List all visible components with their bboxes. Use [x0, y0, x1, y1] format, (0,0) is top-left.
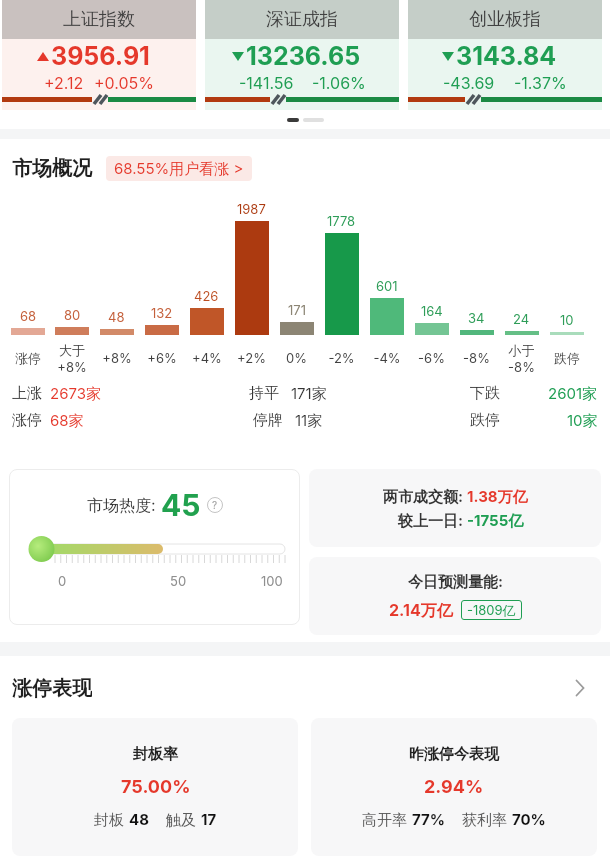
staticText: 触及: [166, 810, 201, 829]
staticText: 2.14万亿: [389, 600, 453, 620]
staticText: 10家: [567, 411, 598, 430]
staticText: 2601家: [548, 384, 598, 403]
staticText: +2.12: [44, 73, 84, 92]
staticText: 上证指数: [63, 8, 135, 31]
staticText: 45: [161, 487, 201, 523]
staticText: -141.56: [239, 73, 294, 92]
staticText: 164: [421, 303, 443, 319]
staticText: 0%: [286, 350, 307, 366]
button[interactable]: 上证指数: [2, 0, 196, 110]
staticText: 1778: [327, 213, 356, 229]
staticText: 34: [468, 310, 485, 326]
staticText: 2.94%: [424, 776, 484, 798]
staticText: -43.69: [443, 73, 495, 92]
staticText: 跌停: [554, 350, 580, 366]
staticText: 两市成交额:: [383, 487, 467, 506]
staticText: 80: [64, 307, 81, 323]
staticText: 50: [170, 573, 187, 589]
staticText: 10: [560, 312, 574, 328]
staticText: 426: [194, 288, 219, 304]
staticText: 77%: [412, 810, 445, 828]
staticText: 0: [58, 573, 67, 589]
staticText: 小于 -8%: [508, 342, 535, 375]
staticText: 100: [261, 573, 283, 589]
staticText: 11家: [295, 411, 323, 430]
staticText: +0.05%: [94, 73, 155, 92]
staticText: 68家: [50, 411, 84, 430]
staticText: 24: [513, 311, 530, 327]
staticText: +6%: [147, 350, 177, 366]
staticText: 创业板指: [469, 8, 541, 31]
staticText: 171家: [291, 384, 327, 403]
staticText: -1.06%: [312, 73, 366, 92]
staticText: -1809亿: [467, 602, 516, 618]
staticText: +4%: [192, 350, 222, 366]
staticText: 涨停表现: [12, 676, 92, 700]
staticText: 较上一日:: [398, 511, 467, 530]
button[interactable]: 封板率: [12, 718, 298, 856]
staticText: 13236.65: [246, 41, 361, 71]
staticText: -8%: [463, 350, 490, 366]
staticText: 68.55%用户看涨 >: [114, 159, 244, 178]
button[interactable]: 68.55%用户看涨 >: [106, 156, 252, 181]
button[interactable]: 深证成指: [205, 0, 399, 110]
button[interactable]: 创业板指: [408, 0, 602, 110]
staticText: 市场热度:: [87, 495, 161, 515]
staticText: 封板率: [133, 745, 178, 764]
staticText: 1987: [237, 201, 266, 217]
staticText: ?: [212, 499, 218, 511]
staticText: 68: [20, 308, 37, 324]
staticText: 封板: [94, 810, 129, 829]
staticText: 2673家: [50, 384, 101, 403]
staticText: 下跌: [470, 384, 500, 403]
staticText: +8%: [102, 350, 132, 366]
staticText: -2%: [328, 350, 355, 366]
staticText: 75.00%: [121, 776, 191, 798]
staticText: 上涨: [12, 384, 42, 403]
staticText: -4%: [373, 350, 401, 366]
staticText: +2%: [237, 350, 266, 366]
staticText: 17: [201, 810, 217, 828]
staticText: 市场概况: [12, 156, 92, 181]
staticText: 持平: [249, 384, 279, 403]
staticText: 大于 +8%: [57, 342, 87, 375]
staticText: 3956.91: [51, 41, 150, 71]
staticText: 跌停: [470, 411, 500, 430]
staticText: -1.37%: [514, 73, 567, 92]
button[interactable]: 昨涨停今表现: [311, 718, 597, 856]
staticText: 132: [151, 305, 173, 321]
staticText: 48: [108, 309, 125, 325]
staticText: -6%: [418, 350, 445, 366]
staticText: 今日预测量能:: [408, 572, 504, 591]
staticText: 171: [288, 302, 306, 318]
staticText: 3143.84: [456, 41, 557, 71]
button[interactable]: 涨停表现: [12, 676, 585, 700]
staticText: 1.38万亿: [467, 487, 528, 506]
staticText: 涨停: [15, 350, 41, 366]
button[interactable]: 两市成交额:: [309, 469, 601, 547]
staticText: 70%: [512, 810, 546, 828]
staticText: 获利率: [462, 810, 512, 829]
staticText: 601: [376, 278, 398, 294]
staticText: 深证成指: [266, 8, 338, 31]
button[interactable]: 今日预测量能:: [309, 557, 601, 635]
button[interactable]: 市场热度:: [9, 469, 300, 625]
staticText: 昨涨停今表现: [409, 745, 499, 764]
staticText: 停牌: [253, 411, 283, 430]
staticText: -1755亿: [467, 511, 524, 530]
staticText: 高开率: [362, 810, 412, 829]
staticText: 48: [129, 810, 149, 828]
staticText: 涨停: [12, 411, 42, 430]
